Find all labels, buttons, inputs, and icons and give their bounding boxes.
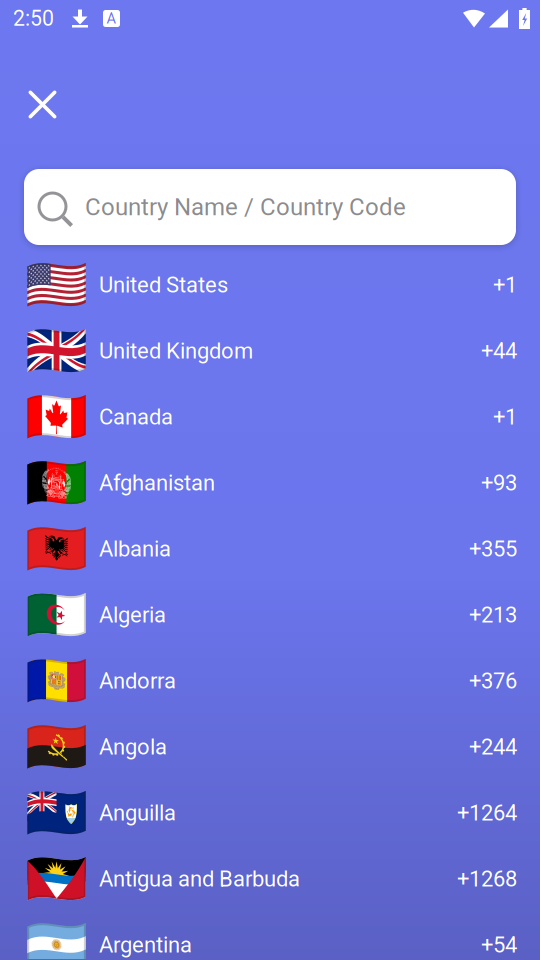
staticText: 🇬🇧 [25,322,88,380]
button[interactable]: 🇩🇿 [0,582,540,648]
staticText: 🇦🇱 [25,520,88,578]
button[interactable]: 🇦🇬 [0,846,540,912]
staticText: 🇦🇩 [25,652,88,710]
staticText: Country Name / Country Code [85,193,406,221]
staticText: +1 [493,272,517,298]
button[interactable]: 🇦🇮 [0,780,540,846]
staticText: Afghanistan [99,470,215,496]
button[interactable]: 🇺🇸 [0,252,540,318]
staticText: Andorra [99,668,176,694]
staticText: +93 [481,470,517,496]
button[interactable]: 🇦🇩 [0,648,540,714]
staticText: A [106,10,116,27]
button[interactable]: 🇦🇱 [0,516,540,582]
button[interactable]: 🇦🇷 [0,912,540,960]
staticText: Antigua and Barbuda [99,866,300,892]
staticText: +355 [469,536,517,562]
staticText: 🇩🇿 [25,586,88,644]
staticText: Anguilla [99,800,176,826]
staticText: 🇦🇴 [25,718,88,776]
staticText: Canada [99,404,173,430]
staticText: +213 [469,602,517,628]
staticText: +376 [469,668,517,694]
staticText: 🇦🇫 [25,454,88,512]
staticText: United Kingdom [99,338,253,364]
staticText: +1264 [457,800,517,826]
staticText: +1 [493,404,517,430]
button[interactable]: Close [15,77,70,132]
staticText: +54 [481,932,517,958]
button[interactable]: 🇦🇴 [0,714,540,780]
button[interactable]: Country Name / Country Code [24,169,516,245]
staticText: Angola [99,734,167,760]
staticText: 🇦🇮 [25,784,88,842]
staticText: Albania [99,536,171,562]
staticText: 🇺🇸 [25,256,88,314]
staticText: 2:50 [13,6,54,31]
button[interactable]: 🇬🇧 [0,318,540,384]
staticText: +244 [469,734,517,760]
staticText: 🇦🇷 [25,916,88,960]
staticText: 🇦🇬 [25,850,88,908]
staticText: +1268 [457,866,517,892]
staticText: Argentina [99,932,192,958]
button[interactable]: 🇦🇫 [0,450,540,516]
staticText: 🇨🇦 [25,388,88,446]
button[interactable]: 🇨🇦 [0,384,540,450]
staticText: Algeria [99,602,166,628]
staticText: +44 [481,338,517,364]
staticText: United States [99,272,228,298]
